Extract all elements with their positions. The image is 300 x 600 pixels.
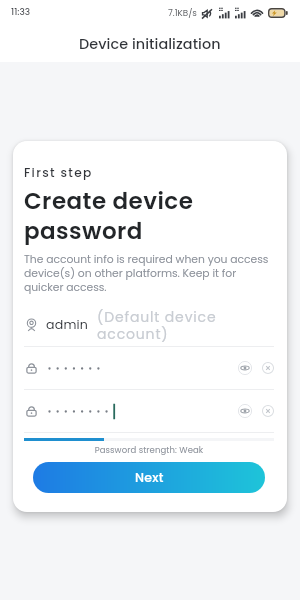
button[interactable]: Show password: [238, 404, 252, 418]
staticText: Device initialization: [79, 34, 221, 54]
staticText: Create device password: [24, 185, 219, 247]
staticText: Password strength: Weak: [24, 444, 274, 456]
button[interactable]: Clear: [262, 405, 274, 417]
button[interactable]: Clear: [262, 362, 274, 374]
staticText: 11:33: [11, 6, 31, 19]
staticText: First step: [24, 164, 93, 181]
staticText: Next: [135, 469, 164, 486]
button[interactable]: Show password: [24, 390, 274, 432]
button[interactable]: admin: [24, 304, 274, 347]
staticText: admin: [46, 316, 89, 334]
button[interactable]: Next: [33, 462, 265, 493]
staticText: (Default device account): [97, 307, 221, 344]
button[interactable]: Show password: [238, 361, 252, 375]
staticText: The account info is required when you ac…: [24, 252, 274, 295]
button[interactable]: Show password: [24, 347, 274, 389]
staticText: 7.1KB/s: [168, 7, 197, 19]
